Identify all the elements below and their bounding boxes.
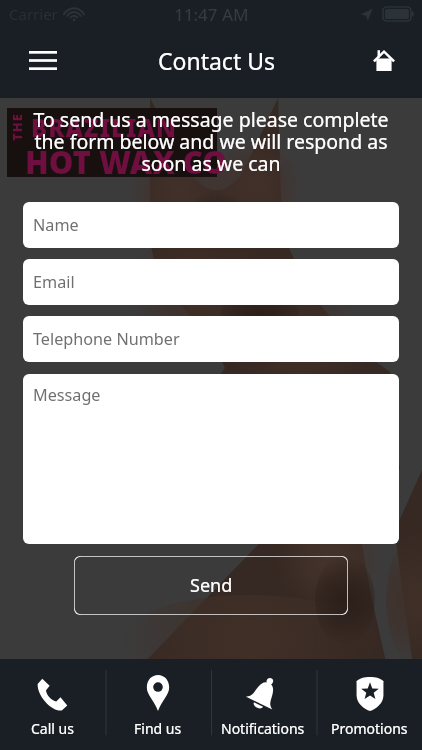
button[interactable]: Telephone Number bbox=[23, 316, 399, 362]
staticText: Message bbox=[33, 384, 101, 406]
button[interactable]: Call us bbox=[0, 659, 105, 750]
button[interactable]: Name bbox=[23, 202, 399, 248]
staticText: HOT WAX CO bbox=[25, 141, 228, 183]
button[interactable]: Home bbox=[362, 38, 406, 82]
button[interactable]: Find us bbox=[105, 659, 210, 750]
staticText: To send us a message please complete the… bbox=[17, 106, 405, 177]
button[interactable]: Notifications bbox=[210, 659, 316, 750]
button[interactable]: Promotions bbox=[316, 659, 422, 750]
staticText: 11:47 AM bbox=[174, 3, 249, 26]
staticText: Contact Us bbox=[158, 45, 276, 76]
button[interactable]: Email bbox=[23, 259, 399, 305]
staticText: Promotions bbox=[331, 719, 408, 738]
staticText: THE bbox=[8, 107, 26, 147]
staticText: Carrier bbox=[9, 4, 58, 24]
staticText: Telephone Number bbox=[33, 328, 180, 350]
staticText: Call us bbox=[31, 719, 74, 738]
button[interactable]: Menu bbox=[21, 38, 65, 82]
staticText: BRAZILIAN bbox=[31, 111, 178, 144]
staticText: Send bbox=[190, 573, 233, 598]
staticText: Notifications bbox=[221, 719, 305, 738]
staticText: Email bbox=[33, 271, 75, 293]
button[interactable]: Message bbox=[23, 374, 399, 544]
button[interactable]: Send bbox=[74, 556, 348, 615]
staticText: Name bbox=[33, 214, 79, 236]
staticText: Find us bbox=[134, 719, 182, 738]
